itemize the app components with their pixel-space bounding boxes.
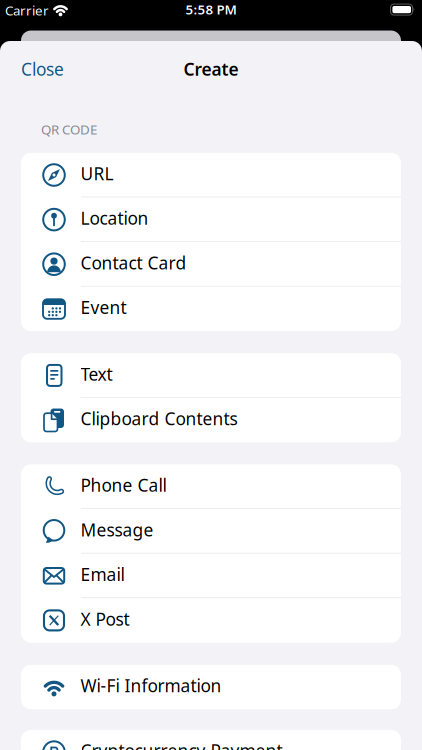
staticText: Wi-Fi Information: [80, 674, 221, 697]
button[interactable]: Contact Card: [21, 242, 401, 286]
button[interactable]: URL: [21, 153, 401, 197]
staticText: URL: [80, 162, 113, 185]
staticText: Clipboard Contents: [80, 407, 237, 430]
staticText: 5:58 PM: [185, 0, 236, 18]
staticText: X Post: [80, 607, 129, 630]
staticText: Create: [183, 57, 238, 80]
button[interactable]: Event: [21, 286, 401, 331]
staticText: Phone Call: [80, 474, 166, 497]
button[interactable]: Location: [21, 197, 401, 242]
staticText: Contact Card: [80, 251, 186, 274]
button[interactable]: Clipboard Contents: [21, 398, 401, 442]
staticText: Email: [80, 563, 124, 586]
staticText: Carrier: [5, 1, 49, 19]
staticText: Close: [21, 57, 64, 80]
button[interactable]: Close: [21, 57, 64, 80]
button[interactable]: X Post: [21, 598, 401, 643]
button[interactable]: Text: [21, 353, 401, 398]
button[interactable]: Phone Call: [21, 464, 401, 509]
button[interactable]: Cryptocurrency Payment: [21, 730, 401, 750]
button[interactable]: Wi-Fi Information: [21, 665, 401, 709]
staticText: Cryptocurrency Payment: [80, 739, 282, 750]
staticText: Event: [80, 296, 126, 319]
staticText: Message: [80, 518, 153, 541]
button[interactable]: Email: [21, 553, 401, 598]
staticText: QR CODE: [41, 120, 97, 138]
button[interactable]: Message: [21, 509, 401, 553]
staticText: Location: [80, 207, 148, 230]
staticText: Text: [80, 362, 112, 385]
